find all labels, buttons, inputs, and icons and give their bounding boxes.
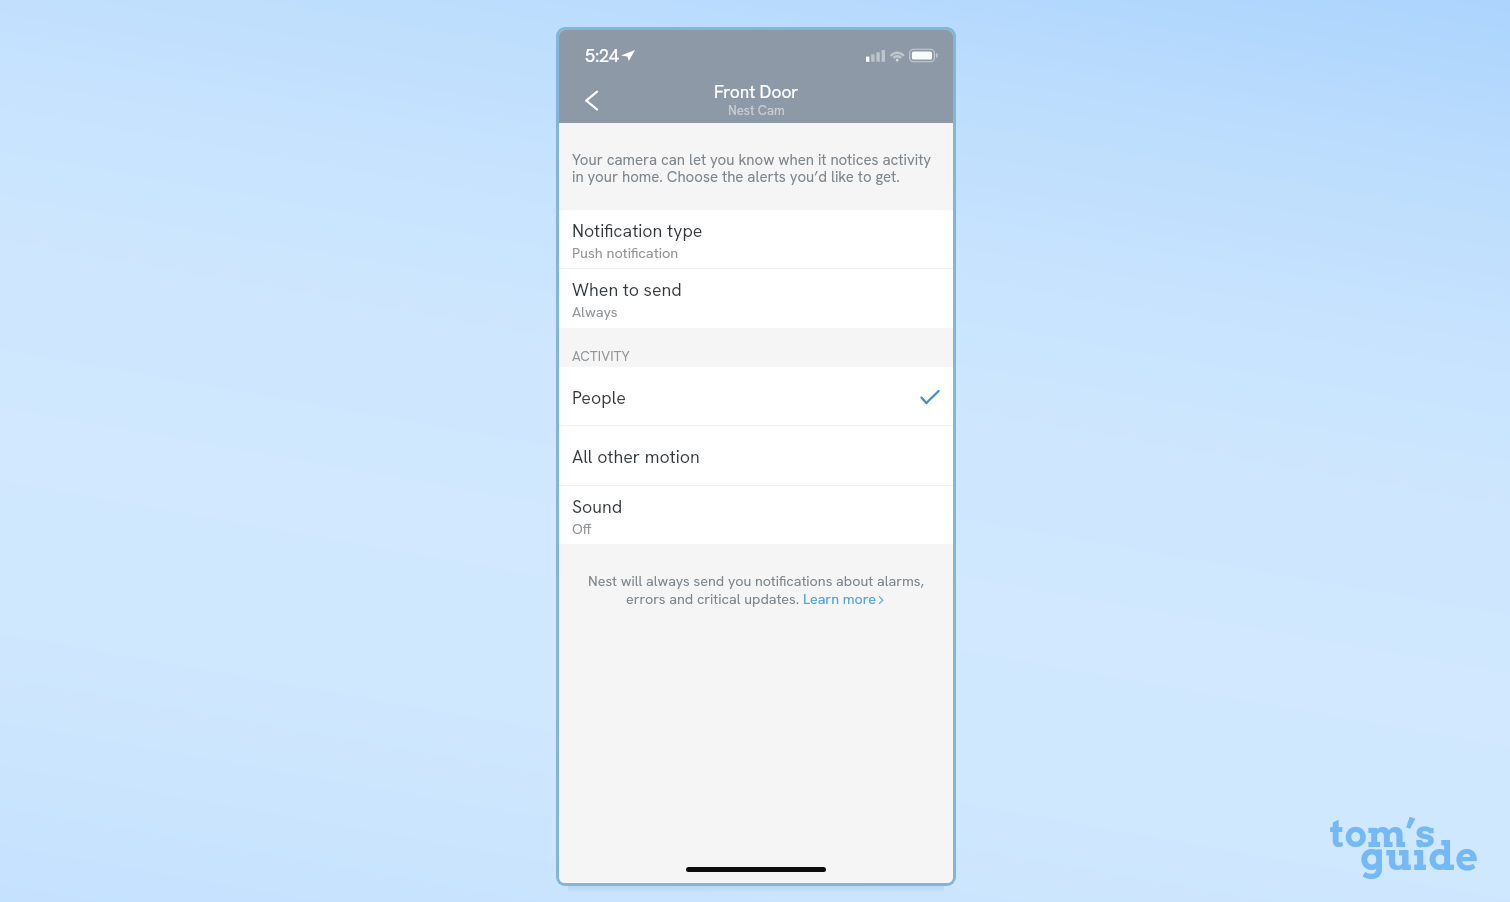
staticText: Always xyxy=(572,302,618,321)
button[interactable]: People xyxy=(559,367,953,425)
staticText: Learn more xyxy=(803,590,876,609)
button[interactable]: When to send xyxy=(559,269,953,328)
staticText: Sound xyxy=(572,495,623,518)
button[interactable]: Sound xyxy=(559,486,953,544)
staticText: ACTIVITY xyxy=(572,347,630,365)
staticText: Off xyxy=(572,519,592,538)
staticText: errors and critical updates. xyxy=(626,590,803,609)
button[interactable]: Learn more xyxy=(803,590,886,609)
staticText: When to send xyxy=(572,278,682,301)
staticText: Front Door xyxy=(714,81,799,104)
staticText: 5:24 xyxy=(585,44,619,67)
staticText: Your camera can let you know when it not… xyxy=(572,150,932,187)
button[interactable]: All other motion xyxy=(559,426,953,485)
staticText: Nest will always send you notifications … xyxy=(588,572,924,591)
staticText: All other motion xyxy=(572,445,700,468)
button[interactable]: Back xyxy=(573,84,613,124)
staticText: Nest Cam xyxy=(728,102,785,119)
staticText: Push notification xyxy=(572,243,679,262)
staticText: People xyxy=(572,386,626,409)
staticText: guide xyxy=(1360,833,1479,880)
button[interactable]: Notification type xyxy=(559,210,953,268)
staticText: tom’s xyxy=(1330,811,1436,856)
staticText: Notification type xyxy=(572,219,703,242)
